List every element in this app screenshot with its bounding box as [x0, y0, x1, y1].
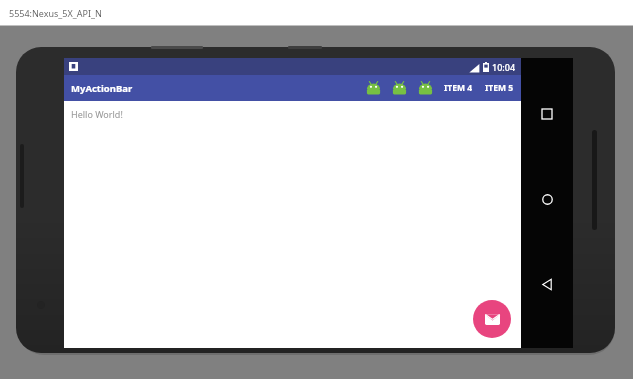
staticText: Hello World!: [71, 108, 123, 120]
button[interactable]: ITEM 4: [438, 75, 479, 101]
staticText: ITEM 5: [485, 82, 514, 94]
button[interactable]: Compose mail: [473, 300, 511, 338]
staticText: MyActionBar: [71, 82, 133, 95]
staticText: 5554:Nexus_5X_API_N: [9, 7, 102, 19]
button[interactable]: Action 1: [360, 75, 386, 101]
button[interactable]: Action 3: [412, 75, 438, 101]
button[interactable]: ITEM 5: [479, 75, 521, 101]
button[interactable]: Recents: [534, 101, 560, 127]
button[interactable]: Action 2: [386, 75, 412, 101]
staticText: 10:04: [492, 61, 516, 73]
button[interactable]: Home: [534, 186, 560, 212]
staticText: ITEM 4: [444, 82, 473, 94]
button[interactable]: Back: [534, 271, 560, 297]
